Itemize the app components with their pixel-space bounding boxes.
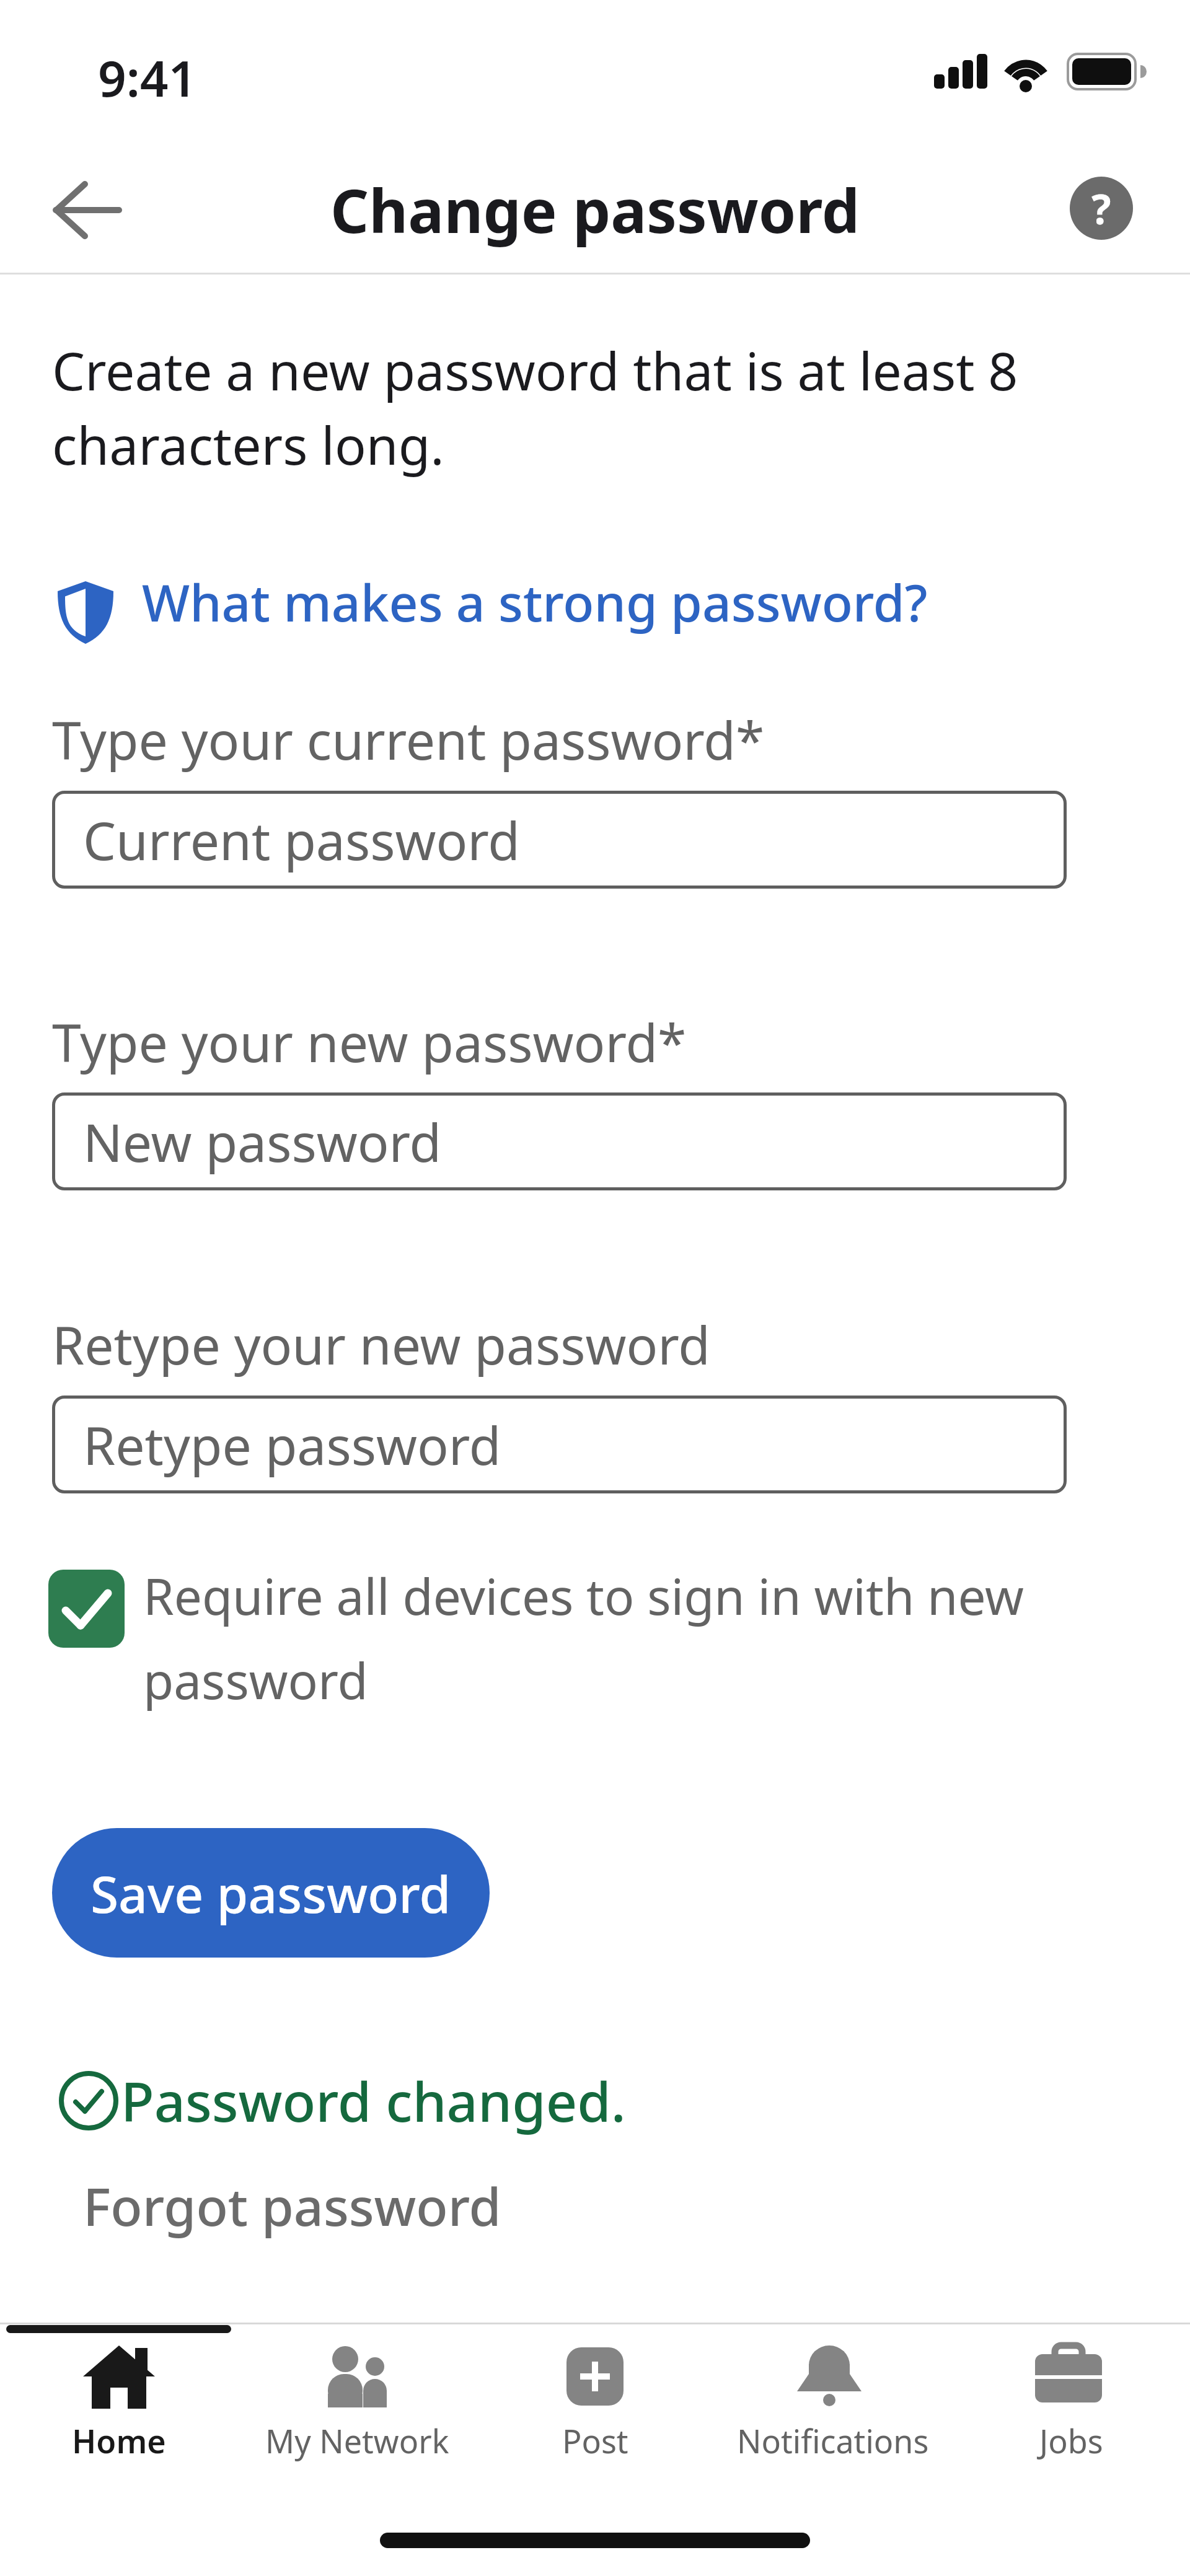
staticText: Type your new password*	[52, 1006, 687, 1077]
button[interactable]: ?	[1070, 177, 1133, 240]
button[interactable]: Require all devices to sign in with new …	[48, 1562, 1158, 1735]
staticText: 9:41	[98, 43, 197, 111]
button[interactable]: Jobs	[952, 2333, 1190, 2466]
staticText: New password	[83, 1106, 442, 1177]
button[interactable]	[55, 183, 121, 237]
button[interactable]: Home	[0, 2333, 238, 2466]
staticText: Password changed.	[121, 2064, 626, 2138]
staticText: Notifications	[737, 2419, 929, 2463]
button[interactable]: What makes a strong password?	[52, 570, 1056, 657]
staticText: Require all devices to sign in with new …	[143, 1562, 1024, 1713]
button[interactable]: New password	[52, 1092, 1067, 1190]
button[interactable]: Save password	[52, 1828, 490, 1958]
staticText: Post	[562, 2419, 628, 2463]
button[interactable]: Forgot password	[83, 2170, 501, 2241]
staticText: Type your current password*	[52, 704, 765, 775]
staticText: My Network	[265, 2419, 449, 2463]
staticText: Change password	[330, 169, 860, 250]
button[interactable]: Notifications	[714, 2333, 952, 2466]
staticText: Current password	[83, 804, 520, 875]
staticText: ?	[1091, 180, 1111, 236]
staticText: What makes a strong password?	[142, 567, 928, 636]
staticText: Home	[72, 2419, 166, 2463]
button[interactable]: Current password	[52, 791, 1067, 889]
staticText: Jobs	[1039, 2419, 1103, 2463]
staticText: Retype password	[83, 1409, 501, 1480]
button[interactable]: Post	[476, 2333, 714, 2466]
button[interactable]: My Network	[238, 2333, 476, 2466]
staticText: Retype your new password	[52, 1309, 711, 1379]
button[interactable]: Retype password	[52, 1396, 1067, 1493]
staticText: Create a new password that is at least 8…	[52, 335, 1018, 480]
staticText: Save password	[90, 1858, 451, 1928]
